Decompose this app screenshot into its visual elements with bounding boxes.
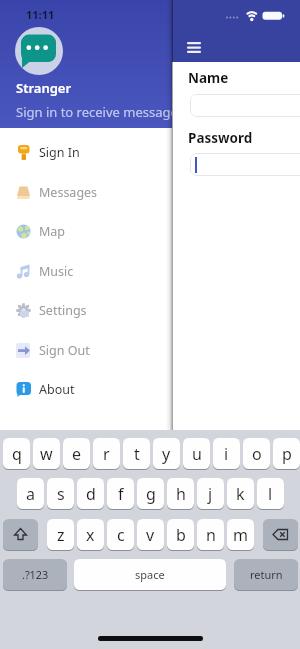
button[interactable]: h: [167, 478, 194, 510]
button[interactable]: r: [93, 438, 120, 470]
button[interactable]: return: [234, 559, 298, 591]
button[interactable]: k: [227, 478, 254, 510]
staticText: Stranger: [16, 79, 72, 97]
button[interactable]: i: [213, 438, 240, 470]
button[interactable]: .?123: [3, 559, 67, 591]
staticText: x: [86, 524, 95, 546]
button[interactable]: [263, 519, 298, 551]
button[interactable]: a: [17, 478, 44, 510]
staticText: Name: [188, 69, 229, 87]
staticText: .?123: [22, 567, 49, 582]
staticText: j: [208, 483, 213, 505]
staticText: z: [57, 524, 65, 546]
button[interactable]: space: [74, 559, 226, 591]
staticText: y: [162, 443, 171, 465]
button[interactable]: n: [197, 519, 224, 551]
staticText: e: [72, 443, 82, 465]
staticText: Map: [39, 223, 66, 240]
button[interactable]: p: [273, 438, 300, 470]
button[interactable]: z: [47, 519, 74, 551]
staticText: Settings: [39, 302, 87, 319]
staticText: Sign in to receive messages: [16, 103, 188, 121]
staticText: Password: [188, 129, 253, 147]
button[interactable]: [190, 153, 300, 176]
button[interactable]: Map: [0, 211, 172, 251]
button[interactable]: Sign In: [0, 132, 172, 172]
staticText: f: [118, 483, 124, 505]
button[interactable]: o: [243, 438, 270, 470]
staticText: n: [206, 524, 216, 546]
button[interactable]: Messages: [0, 172, 172, 212]
button[interactable]: y: [153, 438, 180, 470]
button[interactable]: [3, 519, 38, 551]
button[interactable]: w: [33, 438, 60, 470]
button[interactable]: l: [257, 478, 284, 510]
button[interactable]: v: [137, 519, 164, 551]
staticText: 11:11: [26, 7, 55, 22]
staticText: k: [236, 483, 245, 505]
button[interactable]: m: [227, 519, 254, 551]
staticText: m: [233, 524, 248, 546]
button[interactable]: j: [197, 478, 224, 510]
button[interactable]: About: [0, 369, 172, 409]
button[interactable]: [190, 94, 300, 117]
staticText: Sign In: [39, 144, 80, 161]
staticText: v: [146, 524, 155, 546]
staticText: b: [176, 524, 186, 546]
button[interactable]: Music: [0, 251, 172, 291]
staticText: h: [176, 483, 186, 505]
button[interactable]: s: [47, 478, 74, 510]
button[interactable]: e: [63, 438, 90, 470]
staticText: Music: [39, 263, 74, 280]
staticText: Sign Out: [39, 342, 90, 359]
staticText: space: [135, 567, 165, 582]
button[interactable]: u: [183, 438, 210, 470]
staticText: p: [282, 443, 292, 465]
staticText: s: [57, 483, 65, 505]
staticText: c: [117, 524, 125, 546]
button[interactable]: b: [167, 519, 194, 551]
staticText: u: [192, 443, 202, 465]
staticText: g: [146, 483, 156, 505]
staticText: a: [26, 483, 35, 505]
button[interactable]: q: [3, 438, 30, 470]
staticText: return: [250, 567, 283, 582]
button[interactable]: g: [137, 478, 164, 510]
button[interactable]: x: [77, 519, 104, 551]
button[interactable]: t: [123, 438, 150, 470]
button[interactable]: Settings: [0, 290, 172, 330]
staticText: w: [40, 443, 53, 465]
staticText: l: [268, 483, 273, 505]
button[interactable]: [182, 37, 206, 58]
button[interactable]: d: [77, 478, 104, 510]
button[interactable]: c: [107, 519, 134, 551]
button[interactable]: Sign Out: [0, 330, 172, 370]
staticText: t: [134, 443, 140, 465]
staticText: o: [252, 443, 262, 465]
button[interactable]: f: [107, 478, 134, 510]
staticText: i: [224, 443, 229, 465]
staticText: q: [12, 443, 22, 465]
staticText: r: [103, 443, 110, 465]
staticText: Messages: [39, 184, 98, 201]
staticText: About: [39, 381, 75, 398]
staticText: d: [86, 483, 96, 505]
